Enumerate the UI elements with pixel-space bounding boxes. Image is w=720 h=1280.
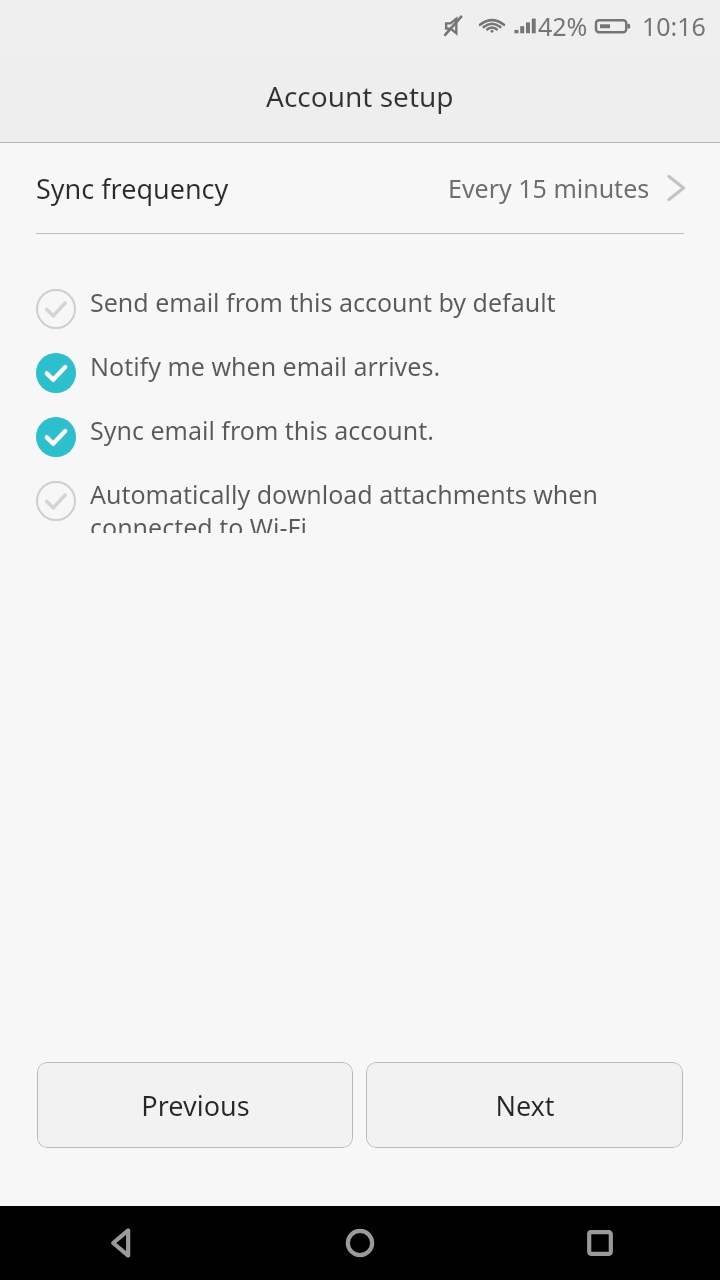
- staticText: Next: [495, 1087, 555, 1124]
- button[interactable]: Home: [240, 1206, 480, 1280]
- button[interactable]: Recent apps: [480, 1206, 720, 1280]
- staticText: 10:16: [642, 9, 706, 43]
- button[interactable]: Sync email from this account.: [0, 405, 720, 469]
- staticText: Sync email from this account.: [90, 413, 434, 447]
- button[interactable]: Sync frequency: [0, 143, 720, 233]
- staticText: Notify me when email arrives.: [90, 349, 441, 383]
- button[interactable]: Previous: [37, 1062, 353, 1148]
- staticText: Account setup: [266, 77, 454, 115]
- staticText: Previous: [141, 1087, 250, 1124]
- button[interactable]: Automatically download attachments when …: [0, 469, 720, 533]
- button[interactable]: Notify me when email arrives.: [0, 341, 720, 405]
- staticText: Send email from this account by default: [90, 285, 556, 319]
- button[interactable]: Next: [366, 1062, 683, 1148]
- staticText: Automatically download attachments when …: [90, 477, 690, 533]
- staticText: Sync frequency: [36, 170, 229, 207]
- staticText: Every 15 minutes: [448, 171, 650, 205]
- button[interactable]: Send email from this account by default: [0, 277, 720, 341]
- staticText: 42%: [538, 9, 588, 43]
- button[interactable]: Back: [0, 1206, 240, 1280]
